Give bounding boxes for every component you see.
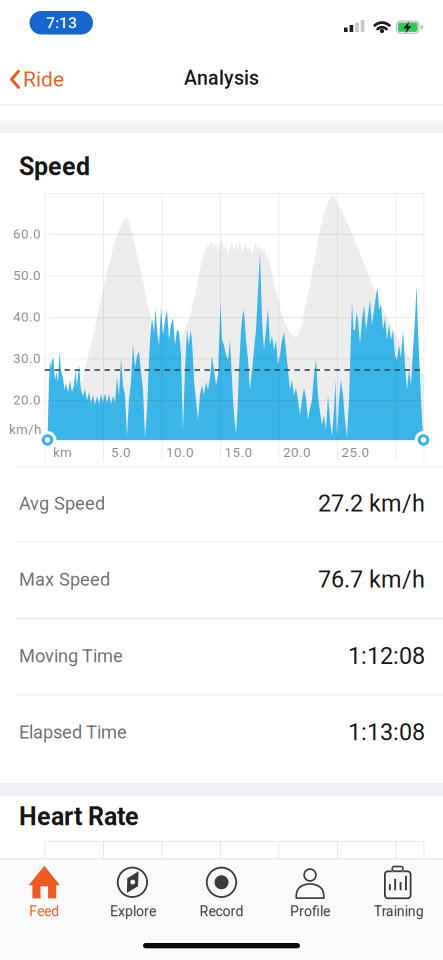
button[interactable]: Feed xyxy=(0,860,89,926)
staticText: 30.0 xyxy=(13,351,41,366)
staticText: 27.2 km/h xyxy=(318,490,425,517)
button[interactable]: Moving Time xyxy=(0,618,443,693)
staticText: 1:13:08 xyxy=(348,719,425,746)
staticText: Record xyxy=(199,903,243,920)
staticText: km/h xyxy=(9,422,41,437)
staticText: 25.0 xyxy=(341,445,369,460)
staticText: Analysis xyxy=(184,67,259,89)
staticText: 50.0 xyxy=(13,268,41,283)
staticText: 5.0 xyxy=(111,445,131,460)
button[interactable]: Explore xyxy=(89,860,177,926)
staticText: Max Speed xyxy=(19,569,110,590)
staticText: Training xyxy=(374,903,424,920)
staticText: 76.7 km/h xyxy=(318,566,425,593)
button[interactable]: Record xyxy=(177,860,266,926)
staticText: 20.0 xyxy=(283,445,311,460)
button[interactable]: Ride xyxy=(10,67,64,92)
staticText: km xyxy=(53,445,72,460)
button[interactable]: Profile xyxy=(266,860,354,926)
staticText: 10.0 xyxy=(166,445,194,460)
button[interactable]: Training xyxy=(354,860,443,926)
staticText: 20.0 xyxy=(13,392,41,408)
staticText: Ride xyxy=(23,67,64,92)
staticText: Moving Time xyxy=(19,645,123,667)
staticText: Elapsed Time xyxy=(19,722,127,743)
button[interactable]: Max Speed xyxy=(0,542,443,617)
staticText: Explore xyxy=(110,903,156,920)
button[interactable]: Avg Speed xyxy=(0,466,443,541)
staticText: 40.0 xyxy=(13,309,41,325)
staticText: 15.0 xyxy=(224,445,252,460)
staticText: Speed xyxy=(19,152,90,181)
button[interactable]: Elapsed Time xyxy=(0,695,443,770)
staticText: 60.0 xyxy=(13,226,41,242)
staticText: 1:12:08 xyxy=(348,642,425,670)
staticText: Heart Rate xyxy=(19,802,139,831)
staticText: Feed xyxy=(29,903,59,920)
staticText: Profile xyxy=(290,903,330,920)
staticText: Avg Speed xyxy=(19,493,105,514)
staticText: 7:13 xyxy=(46,14,77,32)
